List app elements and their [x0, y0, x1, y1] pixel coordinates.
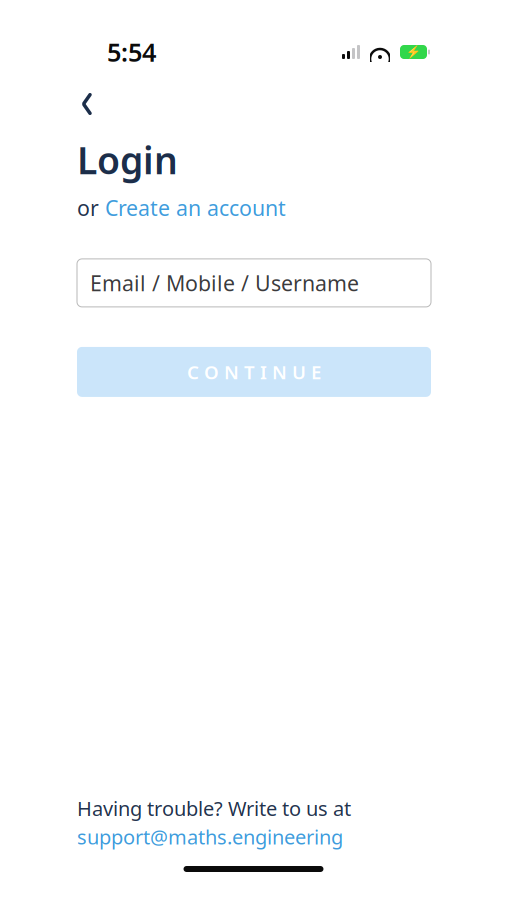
button[interactable]: Email / Mobile / Username	[77, 259, 431, 307]
staticText: or	[77, 194, 105, 222]
staticText: Create an account	[105, 194, 286, 222]
staticText: Having trouble? Write to us at	[77, 795, 351, 821]
button[interactable]: C O N T I N U E	[77, 347, 431, 397]
staticText: Email / Mobile / Username	[90, 269, 359, 297]
staticText: ⚡	[406, 45, 421, 59]
staticText: support@maths.engineering	[77, 823, 343, 850]
button[interactable]: Back	[70, 87, 104, 121]
staticText: Login	[77, 135, 178, 185]
staticText: 5:54	[107, 35, 156, 69]
button[interactable]: Create an account	[105, 194, 286, 222]
staticText: C O N T I N U E	[187, 359, 321, 384]
button[interactable]: support@maths.engineering	[77, 823, 343, 850]
